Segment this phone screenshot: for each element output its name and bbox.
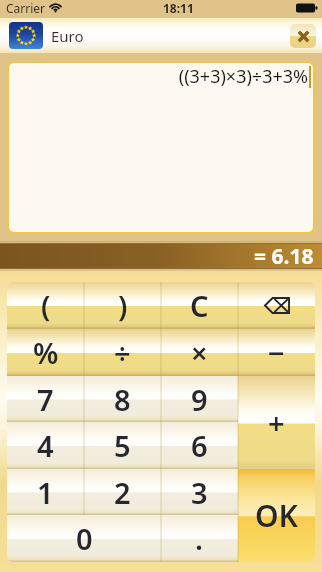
button[interactable]: ((3+3)×3)÷3+3% [9,63,313,232]
staticText: C [190,286,209,325]
staticText: ÷ [114,333,131,372]
button[interactable]: 8 [84,376,161,422]
button[interactable]: . [161,515,238,562]
staticText: 0 [76,519,93,558]
staticText: 2 [114,473,131,512]
staticText: 18:11 [163,0,194,16]
staticText: Carrier [6,0,46,16]
staticText: 7 [37,380,54,419]
staticText: 8 [114,380,131,419]
button[interactable]: 5 [84,422,161,469]
staticText: + [268,403,285,442]
button[interactable]: 4 [7,422,84,469]
staticText: 6 [191,426,208,465]
staticText: 5 [114,426,131,465]
button[interactable]: 7 [7,376,84,422]
staticText: 1 [37,473,54,512]
button[interactable]: − [238,329,315,376]
staticText: ((3+3)×3)÷3+3% [178,64,308,89]
button[interactable]: Close [290,24,316,48]
staticText: = 6.18 [254,242,314,271]
staticText: 4 [37,426,54,465]
button[interactable]: 2 [84,469,161,515]
staticText: − [268,333,285,372]
button[interactable]: 6 [161,422,238,469]
staticText: . [195,519,204,558]
button[interactable]: 3 [161,469,238,515]
button[interactable]: ( [7,282,84,329]
staticText: Euro [51,26,84,46]
button[interactable]: 9 [161,376,238,422]
button[interactable]: ÷ [84,329,161,376]
staticText: % [33,333,59,372]
button[interactable]: C [161,282,238,329]
staticText: 9 [191,380,208,419]
staticText: ( [41,286,51,325]
staticText: OK [255,495,299,536]
staticText: 3 [191,473,208,512]
staticText: × [191,333,208,372]
button[interactable]: + [238,376,315,469]
button[interactable]: % [7,329,84,376]
button[interactable]: 1 [7,469,84,515]
button[interactable]: OK [238,469,315,562]
button[interactable]: × [161,329,238,376]
staticText: ) [118,286,128,325]
button[interactable]: ) [84,282,161,329]
button[interactable]: Backspace [238,282,315,329]
button[interactable]: 0 [7,515,161,562]
button[interactable] [9,22,43,49]
